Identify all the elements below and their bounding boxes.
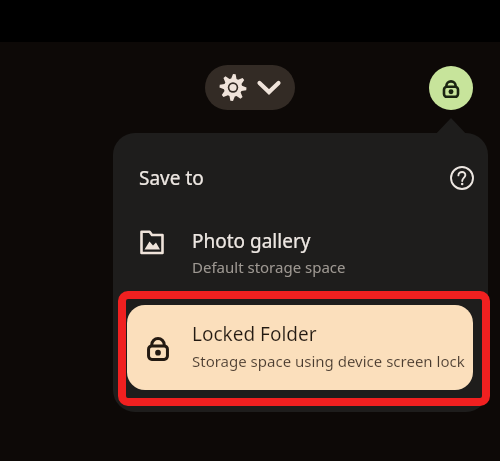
button[interactable]: Settings — [205, 65, 295, 110]
button[interactable]: Help — [446, 162, 478, 194]
button[interactable]: Photo gallery — [127, 219, 473, 285]
staticText: Storage space using device screen lock — [192, 351, 465, 371]
staticText: Save to — [139, 165, 204, 191]
staticText: Default storage space — [192, 257, 346, 277]
button[interactable]: Locked Folder — [429, 66, 473, 110]
staticText: Locked Folder — [192, 321, 317, 347]
staticText: Photo gallery — [192, 228, 311, 254]
button[interactable]: Locked Folder — [127, 305, 473, 390]
